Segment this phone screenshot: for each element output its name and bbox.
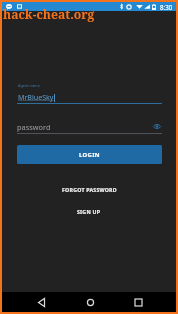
button[interactable]: Home [76, 292, 104, 312]
staticText: FORGOT PASSWORD [62, 186, 117, 193]
button[interactable]: Recent apps [124, 292, 152, 312]
staticText: MrBlueSky [18, 92, 54, 102]
staticText: 8:30 [160, 3, 173, 11]
staticText: hack-cheat.org [3, 6, 95, 23]
staticText: password [17, 122, 51, 132]
staticText: SIGN UP [77, 208, 101, 215]
button[interactable]: Show password [149, 120, 165, 133]
staticText: LOGIN [79, 151, 100, 159]
staticText: Agent name [18, 83, 40, 88]
button[interactable]: Back [27, 292, 55, 312]
button[interactable]: SIGN UP [2, 204, 176, 218]
button[interactable]: FORGOT PASSWORD [2, 182, 176, 196]
button[interactable]: LOGIN [17, 145, 162, 164]
